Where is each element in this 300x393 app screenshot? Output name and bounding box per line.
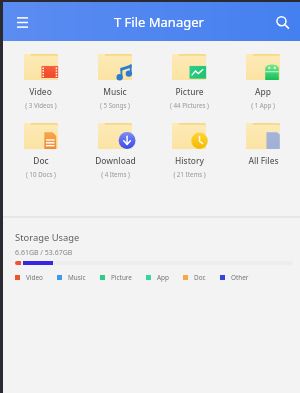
staticText: ( 1 App ) bbox=[251, 101, 275, 109]
staticText: Video bbox=[29, 86, 52, 97]
staticText: ( 5 Songs ) bbox=[100, 101, 130, 109]
staticText: ( 44 Pictures ) bbox=[170, 101, 209, 109]
button[interactable]: History bbox=[152, 123, 226, 178]
button[interactable]: Picture bbox=[100, 273, 132, 282]
staticText: Picture bbox=[111, 273, 132, 282]
staticText: App bbox=[255, 86, 271, 97]
button[interactable]: Doc bbox=[183, 273, 206, 282]
button[interactable]: Video bbox=[3, 54, 78, 109]
button[interactable]: Menu bbox=[10, 10, 34, 34]
button[interactable]: App bbox=[146, 273, 169, 282]
staticText: App bbox=[157, 273, 169, 282]
button[interactable]: App bbox=[226, 54, 300, 109]
button[interactable]: All Files bbox=[226, 123, 300, 178]
staticText: Download bbox=[95, 155, 136, 166]
staticText: ( 21 Items ) bbox=[173, 170, 206, 178]
button[interactable]: Doc bbox=[3, 123, 78, 178]
staticText: Storage Usage bbox=[15, 231, 80, 244]
button[interactable]: Search bbox=[270, 10, 294, 34]
staticText: Music bbox=[103, 86, 127, 97]
staticText: Doc bbox=[194, 273, 206, 282]
button[interactable]: Music bbox=[57, 273, 86, 282]
staticText: All Files bbox=[248, 155, 279, 166]
staticText: Music bbox=[68, 273, 86, 282]
button[interactable]: Music bbox=[78, 54, 152, 109]
staticText: ( 4 Items ) bbox=[101, 170, 130, 178]
button[interactable]: Other bbox=[220, 273, 249, 282]
staticText: Picture bbox=[175, 86, 204, 97]
button[interactable]: Video bbox=[15, 273, 43, 282]
button[interactable]: Download bbox=[78, 123, 152, 178]
staticText: ( 3 Videos ) bbox=[25, 101, 57, 109]
staticText: 6.61GB / 53.67GB bbox=[15, 248, 73, 258]
staticText: Other bbox=[231, 273, 249, 282]
staticText: ( 10 Docs ) bbox=[26, 170, 56, 178]
staticText: Doc bbox=[33, 155, 49, 166]
staticText: T File Manager bbox=[114, 13, 204, 31]
button[interactable]: Picture bbox=[152, 54, 226, 109]
staticText: Video bbox=[26, 273, 43, 282]
staticText: History bbox=[175, 155, 204, 166]
